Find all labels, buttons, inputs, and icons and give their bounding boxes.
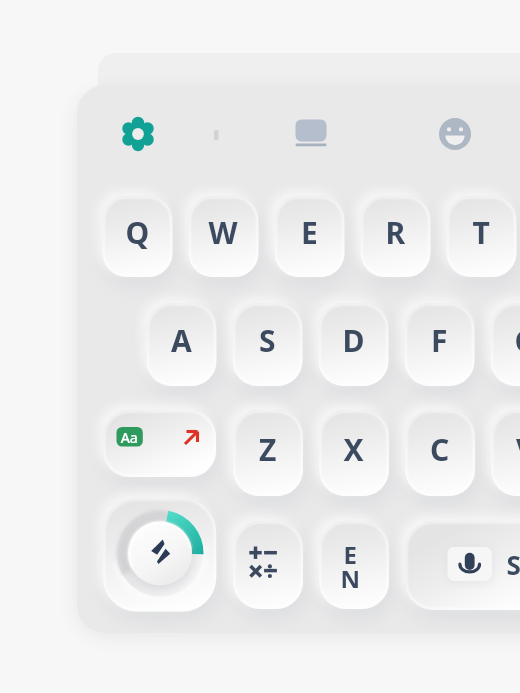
button[interactable]: Clipboard: [293, 116, 329, 152]
button[interactable]: T: [447, 196, 517, 277]
button[interactable]: Settings: [120, 116, 156, 152]
button[interactable]: W: [189, 196, 259, 277]
button[interactable]: SwiftKey menu: [103, 498, 217, 612]
button[interactable]: Toolbar item: [200, 116, 232, 152]
button[interactable]: Emoji: [437, 116, 473, 152]
button[interactable]: G: [491, 303, 520, 386]
button[interactable]: Space: [405, 521, 520, 610]
button[interactable]: D: [319, 303, 389, 386]
button[interactable]: Q: [103, 196, 173, 277]
button[interactable]: X: [319, 410, 389, 496]
button[interactable]: A: [147, 303, 217, 386]
button[interactable]: Symbols: [233, 521, 303, 609]
button[interactable]: Voice input: [448, 547, 491, 581]
button[interactable]: V: [491, 410, 520, 496]
button[interactable]: Z: [233, 410, 303, 496]
button[interactable]: Text style: [103, 410, 216, 477]
button[interactable]: F: [405, 303, 475, 386]
button[interactable]: E: [275, 196, 345, 277]
button[interactable]: R: [361, 196, 431, 277]
button[interactable]: C: [405, 410, 475, 496]
button[interactable]: EN: [319, 521, 389, 609]
button[interactable]: S: [233, 303, 303, 386]
